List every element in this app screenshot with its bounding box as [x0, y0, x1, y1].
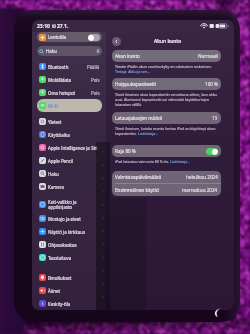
staticText: Bluetooth — [48, 64, 69, 70]
staticText: Ohjauskeskus — [48, 242, 77, 248]
staticText: Haku — [46, 48, 57, 54]
staticText: iPad latautuu vain noin 80 %:iin. — [115, 159, 170, 164]
button[interactable]: Haku — [39, 167, 100, 180]
button[interactable]: Ohjauskeskus — [39, 238, 100, 251]
staticText: Akun kunto — [154, 38, 182, 45]
staticText: Latausjaksojen määrä — [115, 115, 163, 121]
button[interactable]: Valmistuspäivämäärä — [115, 171, 218, 183]
button[interactable]: Yleiset — [39, 115, 100, 128]
button[interactable]: Bluetooth — [39, 60, 100, 73]
staticText: Apple Pencil — [48, 158, 74, 164]
button[interactable]: Akun kunto — [115, 50, 218, 62]
button[interactable]: Haku — [39, 46, 100, 56]
staticText: Äänet — [48, 288, 61, 294]
staticText: Yleiset — [48, 119, 62, 125]
staticText: Haku — [48, 171, 59, 177]
button[interactable]: Oma hotspot — [39, 86, 100, 99]
staticText: Kamera — [48, 184, 64, 190]
staticText: Käyttöaika — [48, 132, 70, 138]
staticText: 15 — [212, 115, 218, 121]
staticText: Päällä — [87, 64, 100, 70]
button[interactable]: Latausjaksojen määrä — [115, 112, 218, 124]
staticText: Näyttö ja kirkkaus — [48, 229, 86, 235]
button[interactable]: Apple Pencil — [39, 154, 100, 167]
staticText: marraskuu 2024 — [182, 187, 218, 193]
button[interactable]: Mobiilidata — [39, 73, 100, 86]
staticText: Akun kunto — [115, 53, 140, 59]
button[interactable]: Keskity-tila — [39, 297, 100, 310]
staticText: Tietoja: Akku ja sen… — [115, 69, 151, 74]
staticText: Lisätietoja… — [170, 159, 191, 164]
button[interactable]: Kamera — [39, 180, 100, 193]
button[interactable]: Lentotila — [39, 32, 100, 42]
staticText: Ensimmäinen käyttö — [115, 187, 160, 193]
button[interactable]: Taustakuva — [39, 251, 100, 264]
staticText: 23:10 — [37, 23, 50, 30]
staticText: Huippukapasiteetti — [115, 81, 157, 87]
staticText: Mobiilidata — [48, 77, 72, 83]
staticText: Pois — [91, 77, 100, 83]
staticText: Pois — [91, 90, 100, 96]
button[interactable]: Koti-valikko ja appikirjasto — [39, 197, 100, 212]
staticText: uusi. Alentunut kapasiteetti voi vähentä… — [115, 97, 210, 102]
button[interactable]: Näyttö ja kirkkaus — [39, 225, 100, 238]
staticText: Keskity-tila — [48, 301, 71, 307]
staticText: Taustakuva — [48, 255, 72, 261]
staticText: kapasiteetin. — [115, 131, 138, 136]
staticText: Koti-valikko ja appikirjasto — [48, 199, 77, 210]
button[interactable]: Ensimmäinen käyttö — [115, 184, 218, 196]
staticText: Tämä ilmaisee, kuinka monta kertaa iPad … — [115, 126, 216, 131]
staticText: Apple Intelligence ja Siri — [48, 145, 98, 151]
staticText: Normaali — [198, 53, 218, 59]
staticText: Moniajo ja eleet — [48, 216, 81, 222]
staticText: heinäkuu 2024 — [186, 174, 218, 180]
staticText: Wi-Fi — [48, 103, 59, 109]
button[interactable]: Wi-Fi — [39, 99, 100, 112]
button[interactable]: Raja 80 % — [115, 145, 218, 157]
staticText: latausten välillä. — [115, 102, 143, 107]
staticText: Raja 80 % — [115, 148, 136, 154]
staticText: Ilmoitukset — [48, 275, 72, 281]
button[interactable]: Huippukapasiteetti — [115, 78, 218, 90]
staticText: Valmistuspäivämäärä — [115, 174, 162, 180]
staticText: Lentotila — [48, 34, 67, 40]
button[interactable]: Moniajo ja eleet — [39, 212, 100, 225]
staticText: ti 27.1. — [52, 23, 69, 30]
button[interactable]: Apple Intelligence ja Siri — [39, 141, 100, 154]
button[interactable]: Back — [112, 37, 121, 46]
button[interactable]: Käyttöaika — [39, 128, 100, 141]
staticText: Oma hotspot — [48, 90, 76, 96]
staticText: Tämän iPadin akun suorituskyky on odotus… — [115, 64, 212, 69]
staticText: Tämä ilmaisee akun kapasiteetin verrattu… — [115, 92, 220, 97]
staticText: 100 % — [205, 81, 218, 87]
staticText: Lisätietoja… — [138, 131, 159, 136]
button[interactable]: Äänet — [39, 284, 100, 297]
button[interactable]: Ilmoitukset — [39, 271, 100, 284]
